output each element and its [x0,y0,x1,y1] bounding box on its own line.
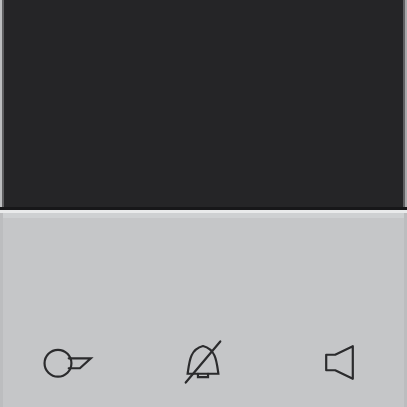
button[interactable]: Open door [0,322,135,402]
button[interactable]: Video display [0,0,407,210]
button[interactable]: Speaker volume [271,322,407,402]
button[interactable]: Mute ringer [135,322,271,402]
